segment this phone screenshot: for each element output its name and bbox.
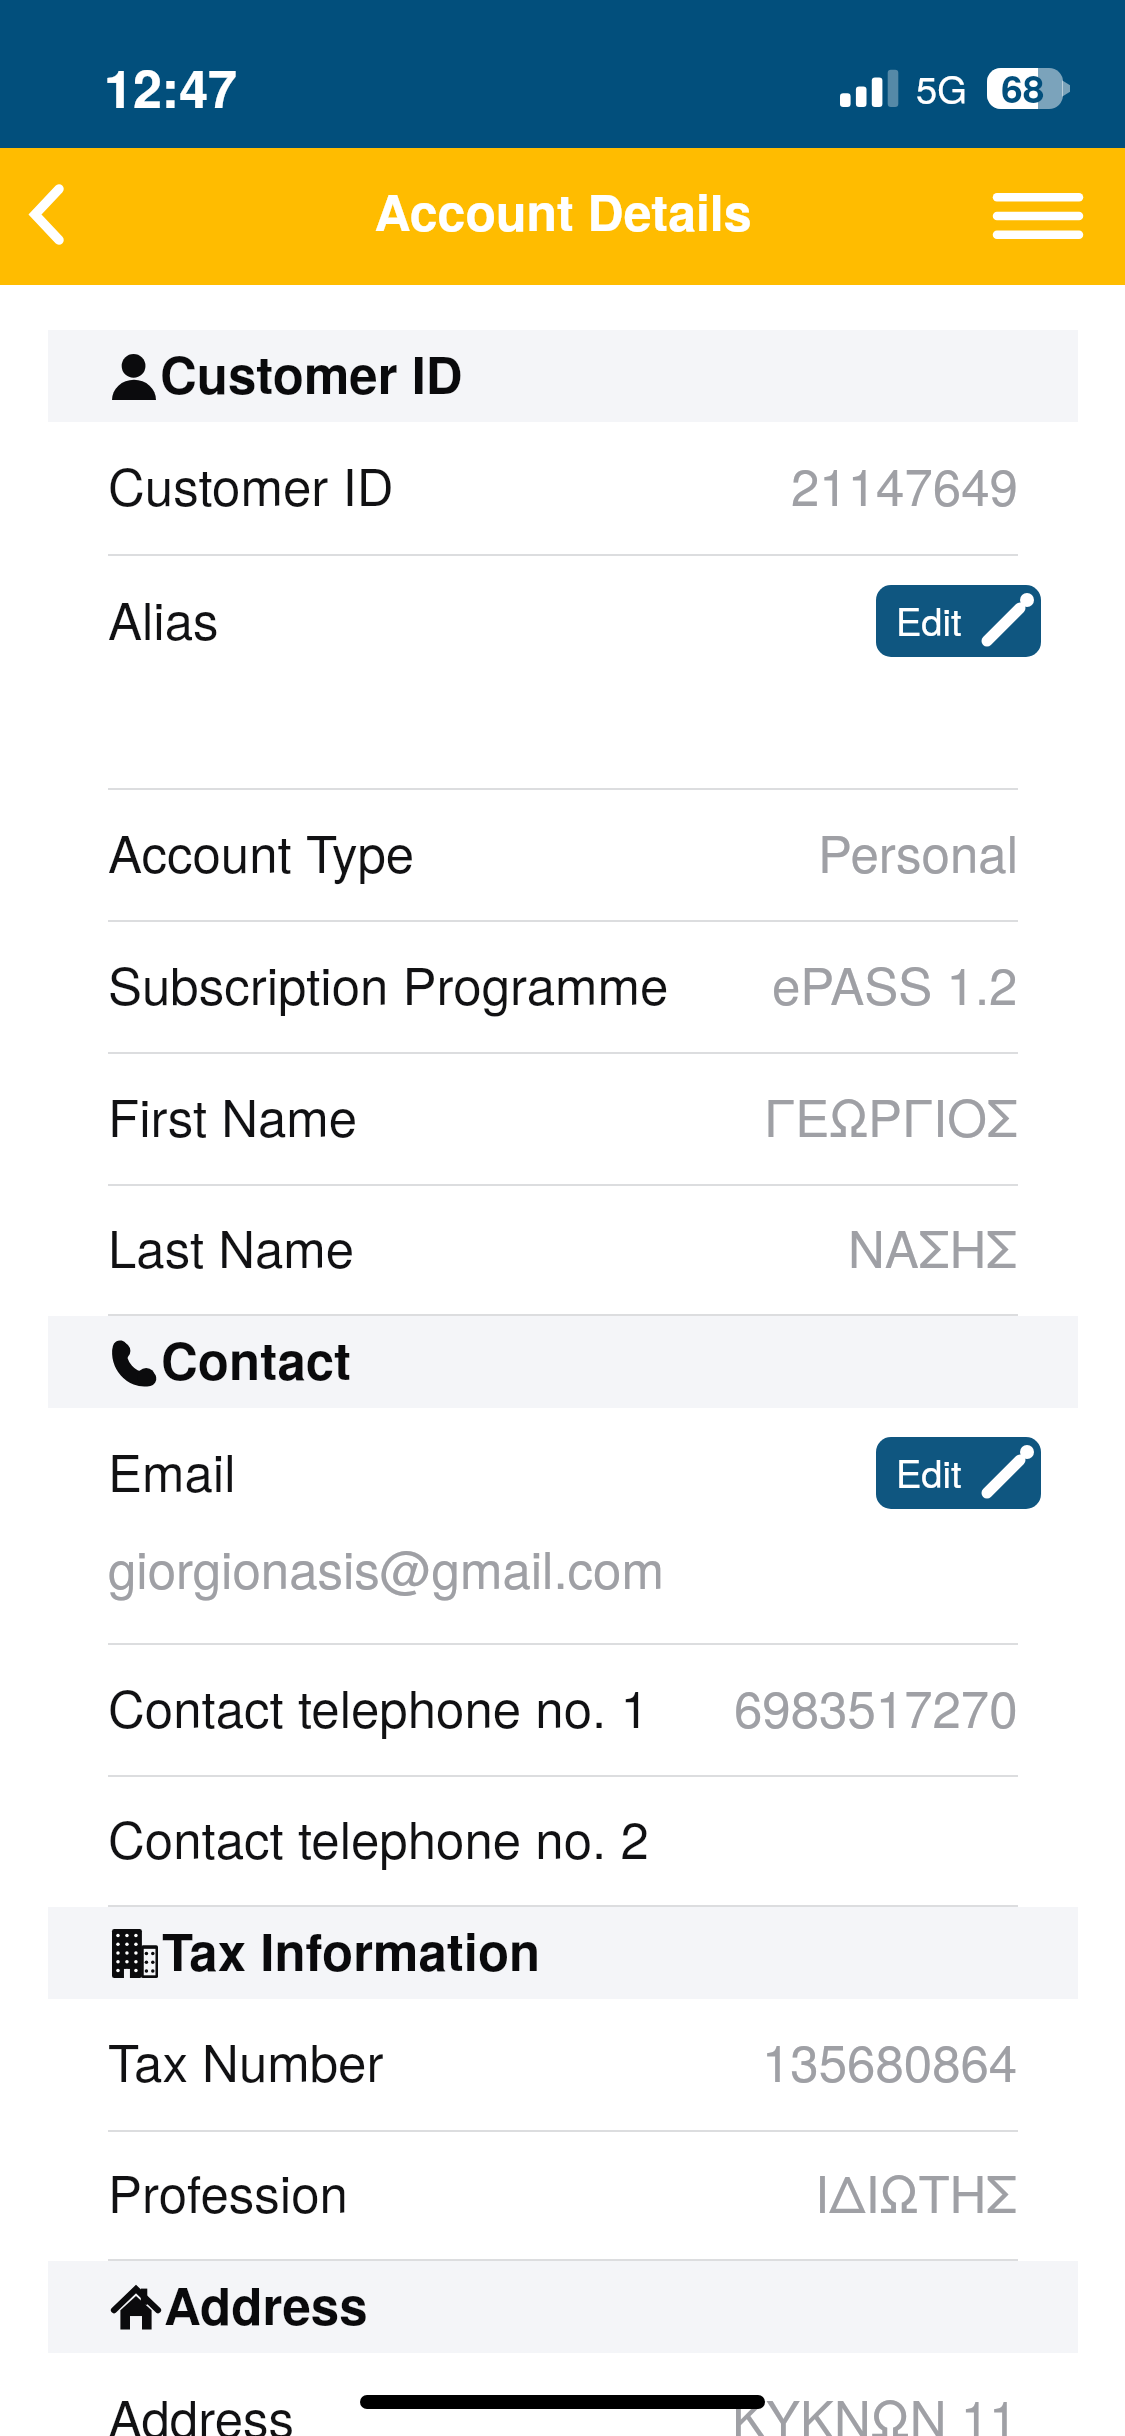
staticText: 12:47 <box>104 49 237 123</box>
staticText: 6983517270 <box>734 1669 1018 1742</box>
staticText: First Name <box>108 1078 358 1151</box>
button[interactable]: Edit <box>876 1437 1041 1509</box>
button[interactable]: Customer ID <box>0 422 1125 554</box>
staticText: Address <box>108 2379 295 2436</box>
staticText: ΚΥΚΝΩΝ 11 <box>732 2379 1018 2436</box>
staticText: 135680864 <box>762 2023 1018 2096</box>
staticText: Tax Information <box>162 1914 541 1987</box>
staticText: Customer ID <box>108 447 394 520</box>
button[interactable]: Alias <box>0 556 1125 688</box>
button[interactable]: Back <box>0 148 96 285</box>
staticText: ΝΑΣΗΣ <box>848 1209 1018 1282</box>
button[interactable]: Email <box>0 1408 1125 1540</box>
button[interactable]: Last Name <box>0 1186 1125 1314</box>
button[interactable]: Contact telephone no. 2 <box>0 1777 1125 1905</box>
staticText: 5G <box>916 60 967 114</box>
staticText: Account Details <box>374 175 752 247</box>
staticText: Alias <box>108 581 219 654</box>
staticText: Contact telephone no. 1 <box>108 1669 649 1742</box>
button[interactable]: Menu <box>993 148 1125 285</box>
button[interactable]: First Name <box>0 1054 1125 1184</box>
button[interactable]: Profession <box>0 2132 1125 2259</box>
button[interactable]: Contact telephone no. 1 <box>0 1645 1125 1775</box>
button[interactable]: Account Type <box>0 790 1125 920</box>
staticText: Email <box>108 1433 236 1506</box>
staticText: Edit <box>896 592 962 646</box>
staticText: Account Type <box>108 814 415 887</box>
staticText: 68 <box>1001 59 1045 115</box>
staticText: Tax Number <box>108 2023 384 2096</box>
staticText: Contact telephone no. 2 <box>108 1800 649 1873</box>
staticText: ePASS 1.2 <box>772 946 1018 1019</box>
staticText: ΓΕΩΡΓΙΟΣ <box>764 1078 1018 1151</box>
staticText: Profession <box>108 2154 348 2227</box>
staticText: Subscription Programme <box>108 946 669 1019</box>
button[interactable]: Tax Number <box>0 1999 1125 2130</box>
button[interactable]: Address <box>0 2354 1125 2436</box>
staticText: Contact <box>161 1323 352 1396</box>
staticText: Edit <box>896 1444 962 1498</box>
staticText: Customer ID <box>160 337 463 410</box>
button[interactable]: Subscription Programme <box>0 922 1125 1052</box>
button[interactable]: Edit <box>876 585 1041 657</box>
staticText: 21147649 <box>791 447 1018 520</box>
staticText: ΙΔΙΩΤΗΣ <box>815 2154 1018 2227</box>
staticText: Address <box>164 2268 368 2341</box>
staticText: Last Name <box>108 1209 355 1282</box>
staticText: giorgionasis@gmail.com <box>108 1530 664 1603</box>
staticText: Personal <box>818 814 1018 887</box>
